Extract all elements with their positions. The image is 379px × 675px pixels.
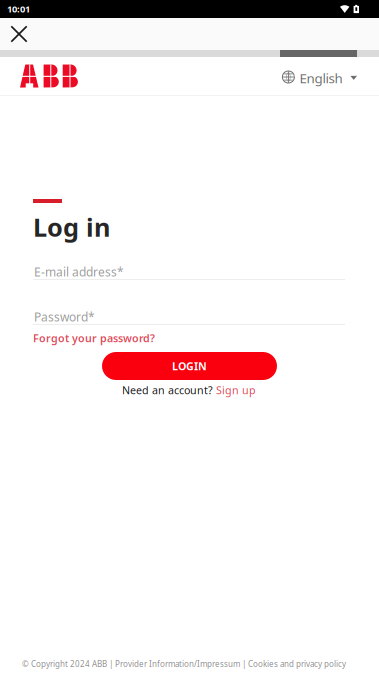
staticText: © Copyright 2024 ABB | Provider Informat… [22,659,346,669]
staticText: E-mail address* [34,264,124,280]
staticText: Need an account? [122,383,213,397]
button[interactable]: English [282,67,357,85]
staticText: Log in [33,210,110,244]
staticText: Forgot your password? [33,331,155,345]
staticText: Sign up [216,383,256,397]
staticText: Password* [34,309,95,325]
button[interactable]: LOGIN [102,352,277,380]
button[interactable]: Forgot your password? [33,331,155,345]
button[interactable]: Close [0,19,38,49]
staticText: LOGIN [172,359,207,373]
staticText: English [299,69,342,87]
button[interactable]: Sign up [216,383,256,397]
staticText: 10:01 [7,3,30,15]
